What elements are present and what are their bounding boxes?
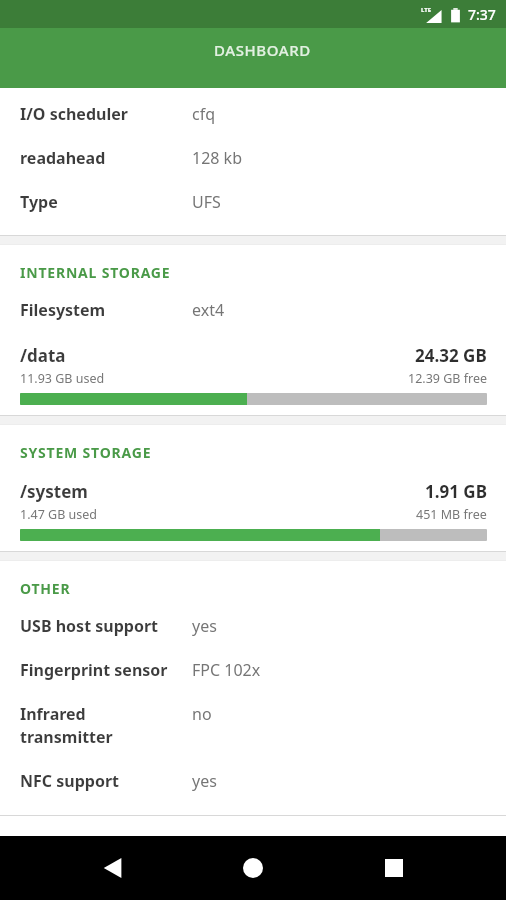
staticText: FPC 102x: [192, 659, 261, 681]
staticText: 7:37: [468, 5, 496, 24]
staticText: /system: [20, 480, 88, 503]
button[interactable]: Recent apps: [366, 840, 422, 896]
staticText: 451 MB free: [416, 506, 487, 523]
staticText: UFS: [192, 191, 221, 213]
staticText: 11.93 GB used: [20, 370, 105, 387]
staticText: USB host support: [20, 615, 159, 637]
button[interactable]: Home: [225, 840, 281, 896]
button[interactable]: Back: [85, 840, 141, 896]
staticText: Fingerprint sensor: [20, 659, 168, 681]
button[interactable]: Filesystem: [0, 288, 506, 332]
staticText: 1.47 GB used: [20, 506, 97, 523]
staticText: Infrared transmitter: [20, 703, 113, 748]
staticText: NFC support: [20, 770, 119, 792]
staticText: DASHBOARD: [214, 40, 311, 60]
staticText: 1.91 GB: [425, 480, 487, 503]
button[interactable]: DASHBOARD: [18, 28, 506, 88]
staticText: no: [192, 703, 212, 725]
staticText: 128 kb: [192, 147, 243, 169]
staticText: 24.32 GB: [415, 344, 487, 367]
button[interactable]: NFC support: [0, 759, 506, 803]
staticText: yes: [192, 615, 217, 637]
staticText: INTERNAL STORAGE: [20, 263, 171, 282]
staticText: Type: [20, 191, 58, 213]
button[interactable]: Fingerprint sensor: [0, 648, 506, 692]
button[interactable]: readahead: [0, 136, 506, 180]
staticText: readahead: [20, 147, 106, 169]
staticText: I/O scheduler: [20, 103, 128, 125]
staticText: LTE: [421, 6, 432, 14]
staticText: yes: [192, 770, 217, 792]
button[interactable]: /system: [0, 468, 506, 541]
staticText: cfq: [192, 103, 216, 125]
button[interactable]: /data: [0, 332, 506, 405]
staticText: ext4: [192, 299, 225, 321]
staticText: 12.39 GB free: [408, 370, 487, 387]
staticText: Filesystem: [20, 299, 106, 321]
button[interactable]: Infrared transmitter: [0, 692, 506, 759]
staticText: SYSTEM STORAGE: [20, 443, 152, 462]
button[interactable]: Type: [0, 180, 506, 224]
staticText: /data: [20, 344, 66, 367]
button[interactable]: USB host support: [0, 604, 506, 648]
staticText: OTHER: [20, 579, 71, 598]
button[interactable]: I/O scheduler: [0, 92, 506, 136]
